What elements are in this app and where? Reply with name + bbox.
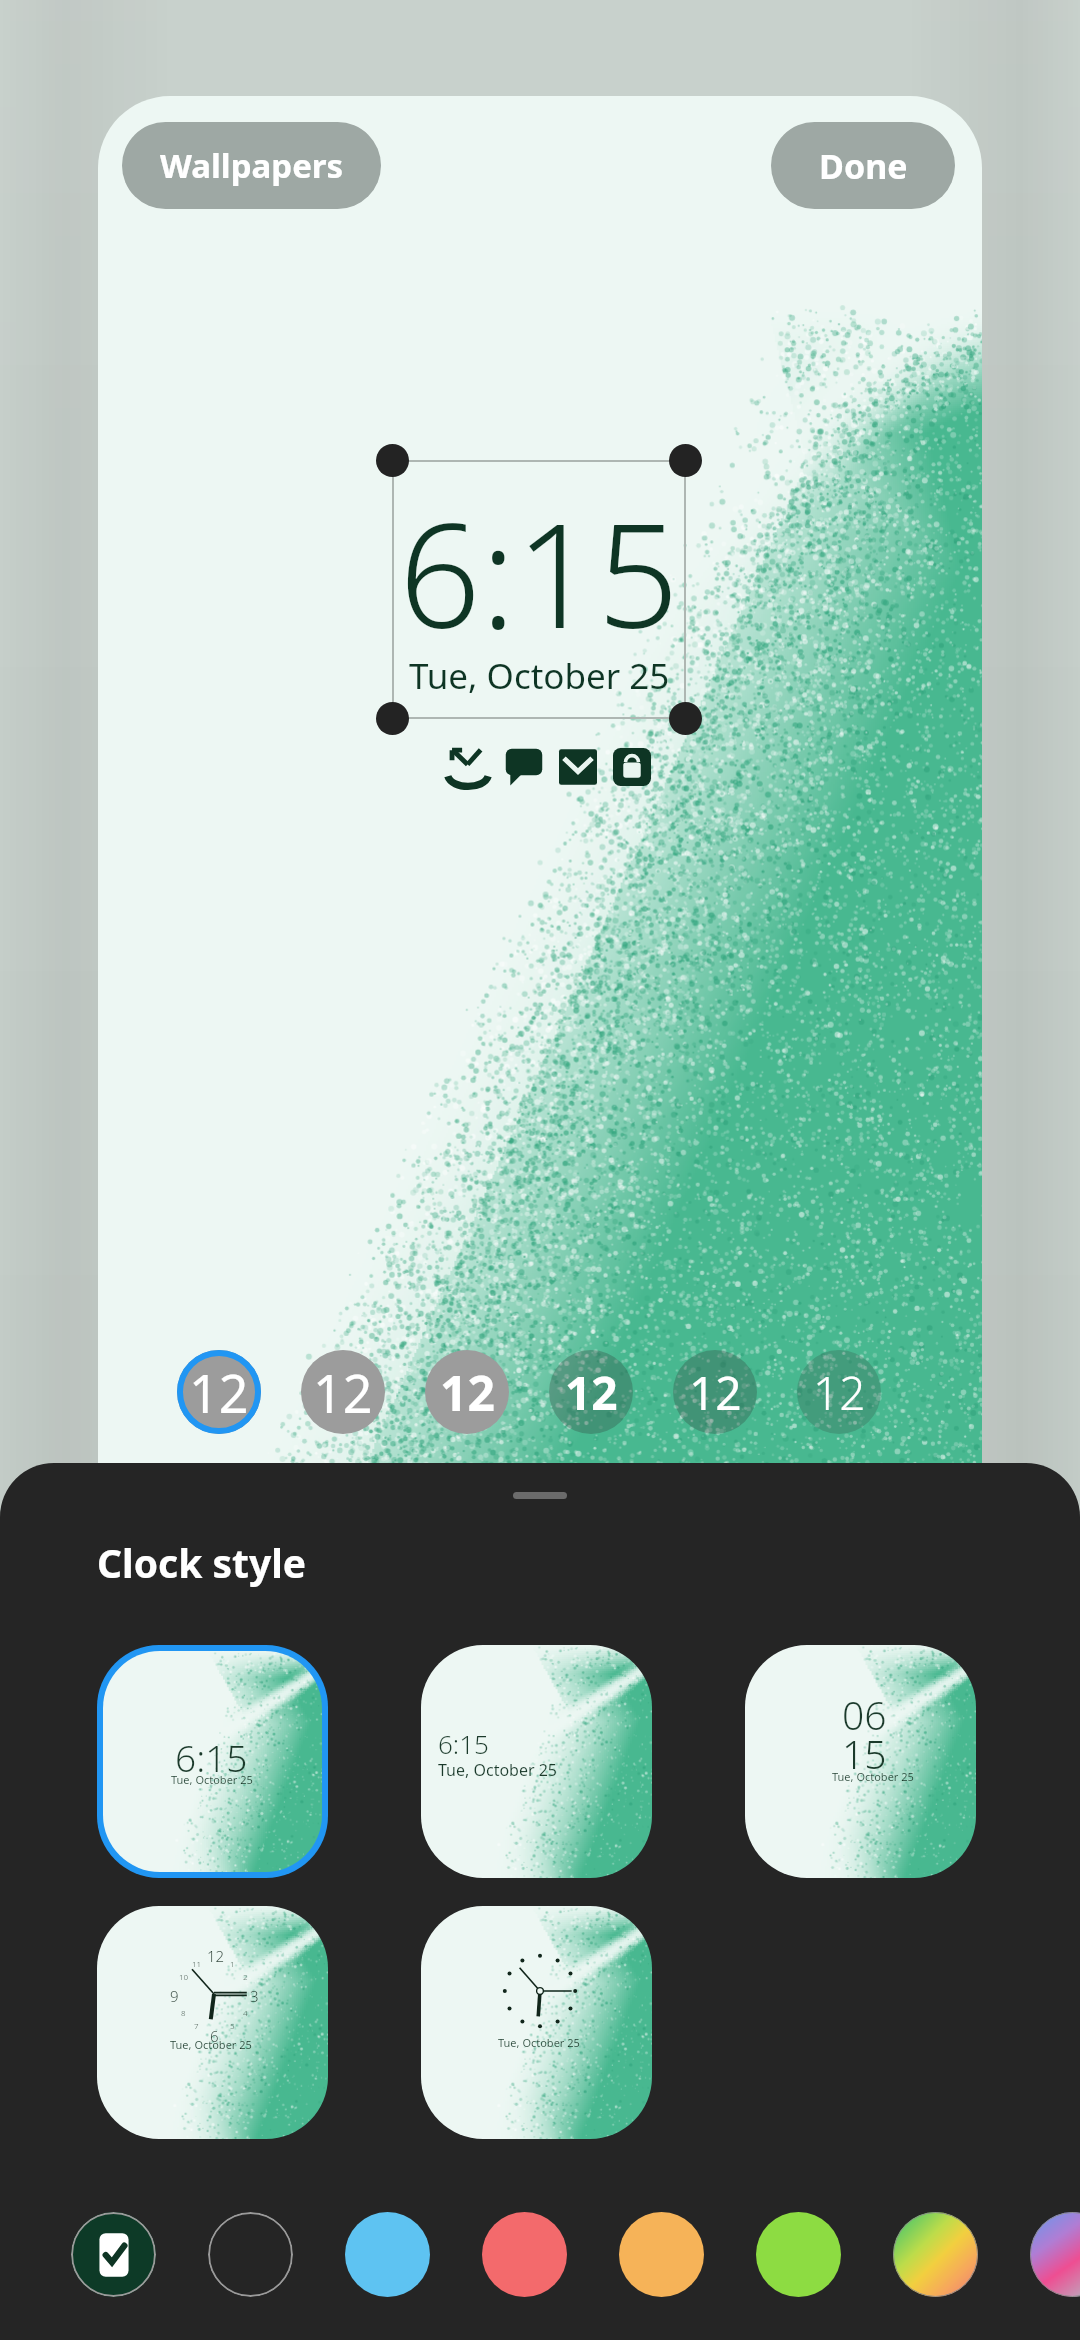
staticText: 12 xyxy=(313,1357,373,1428)
staticText: Tue, October 25 xyxy=(832,1769,914,1784)
staticText: 12 xyxy=(207,1946,225,1966)
button[interactable]: Clock format 12 xyxy=(673,1350,757,1434)
button[interactable]: Clock format 12 xyxy=(797,1350,881,1434)
staticText: 3 xyxy=(250,1986,259,2006)
staticText: 6:15 xyxy=(399,475,679,670)
button[interactable]: Clock format 12 xyxy=(549,1350,633,1434)
staticText: 12 xyxy=(565,1361,618,1424)
button[interactable]: Colour swatch xyxy=(619,2212,704,2297)
staticText: 12 xyxy=(189,1357,249,1428)
staticText: 2 xyxy=(243,1971,248,1982)
staticText: Tue, October 25 xyxy=(438,1759,558,1781)
button[interactable]: Clock format 12 xyxy=(301,1350,385,1434)
button[interactable]: 6:15 xyxy=(421,1645,652,1878)
staticText: 4 xyxy=(243,2007,248,2018)
staticText: 10 xyxy=(179,1971,189,1982)
button[interactable]: Clock format 12 xyxy=(177,1350,261,1434)
staticText: 8 xyxy=(181,2007,186,2018)
button[interactable]: Transparent colour xyxy=(208,2212,293,2297)
button[interactable]: Gradient colour 2 xyxy=(1030,2212,1080,2297)
button[interactable]: Clock format 12 xyxy=(425,1350,509,1434)
staticText: Wallpapers xyxy=(160,143,344,188)
button[interactable]: Automatic colour xyxy=(71,2212,156,2297)
staticText: Tue, October 25 xyxy=(409,652,670,700)
staticText: 06 xyxy=(842,1688,887,1741)
staticText: 12 xyxy=(689,1361,742,1424)
staticText: 7 xyxy=(194,2020,199,2031)
button[interactable]: Tue, October 25 xyxy=(421,1906,652,2139)
button[interactable]: 06 xyxy=(745,1645,976,1878)
staticText: Clock style xyxy=(97,1536,307,1589)
staticText: 1 xyxy=(230,1958,235,1969)
staticText: 6:15 xyxy=(438,1726,489,1761)
button[interactable]: Done xyxy=(771,122,955,209)
button[interactable]: 1 xyxy=(97,1906,328,2139)
staticText: 9 xyxy=(170,1986,179,2006)
staticText: 12 xyxy=(440,1360,495,1425)
button[interactable]: 6:15 xyxy=(97,1645,328,1878)
staticText: 5 xyxy=(230,2020,235,2031)
staticText: 6:15 xyxy=(175,1732,248,1782)
staticText: Tue, October 25 xyxy=(498,2035,580,2050)
button[interactable]: Colour swatch xyxy=(482,2212,567,2297)
button[interactable]: Colour swatch xyxy=(345,2212,430,2297)
staticText: 12 xyxy=(813,1361,866,1424)
staticText: Tue, October 25 xyxy=(170,2037,252,2052)
staticText: 15 xyxy=(842,1727,887,1780)
button[interactable]: Wallpapers xyxy=(122,122,381,209)
staticText: 6 xyxy=(210,2026,219,2046)
staticText: 11 xyxy=(192,1958,202,1969)
button[interactable]: Gradient colour xyxy=(893,2212,978,2297)
staticText: Tue, October 25 xyxy=(171,1772,253,1787)
button[interactable]: Colour swatch xyxy=(756,2212,841,2297)
staticText: Done xyxy=(819,143,908,189)
